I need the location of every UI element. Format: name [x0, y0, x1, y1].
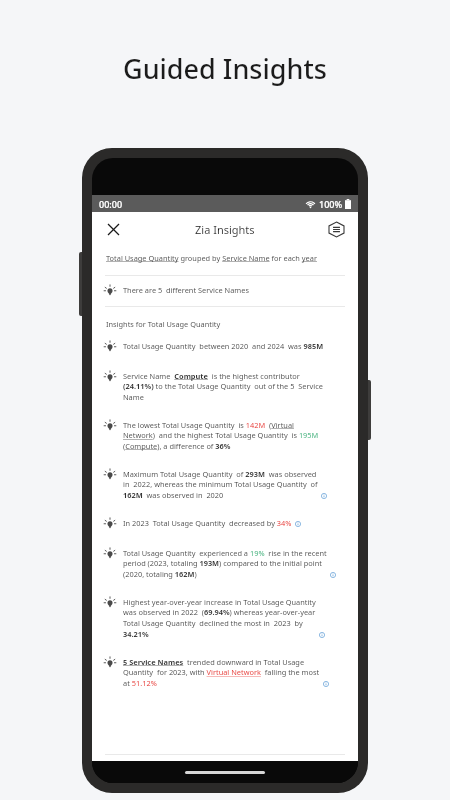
button[interactable]: There are 5 different Service Names: [92, 276, 358, 306]
staticText: Total Usage Quantity grouped by Service …: [106, 253, 317, 263]
button[interactable]: 5 Service Names trended downward in Tota…: [92, 648, 358, 697]
staticText: The lowest Total Usage Quantity is 142M …: [123, 420, 319, 451]
button[interactable]: Menu: [321, 214, 351, 244]
button[interactable]: Close: [98, 214, 128, 244]
staticText: Zia Insights: [195, 222, 255, 237]
button[interactable]: Highest year-over-year increase in Total…: [92, 588, 358, 648]
staticText: In 2023 Total Usage Quantity decreased b…: [123, 518, 292, 528]
button[interactable]: Total Usage Quantity experienced a 19% r…: [92, 539, 358, 588]
button[interactable]: The lowest Total Usage Quantity is 142M …: [92, 411, 358, 460]
staticText: 100%: [319, 198, 343, 210]
staticText: Insights for Total Usage Quantity: [106, 319, 221, 329]
button[interactable]: Maximum Total Usage Quantity of 293M was…: [92, 460, 358, 509]
staticText: Guided Insights: [123, 50, 327, 87]
button[interactable]: Service Name Compute is the highest cont…: [92, 362, 358, 411]
staticText: There are 5 different Service Names: [123, 285, 249, 295]
button[interactable]: Total Usage Quantity between 2020 and 20…: [92, 332, 358, 362]
staticText: Total Usage Quantity experienced a 19% r…: [123, 548, 327, 579]
button[interactable]: In 2023 Total Usage Quantity decreased b…: [92, 509, 358, 539]
staticText: Highest year-over-year increase in Total…: [123, 597, 316, 639]
staticText: Maximum Total Usage Quantity of 293M was…: [123, 469, 318, 500]
staticText: Total Usage Quantity between 2020 and 20…: [123, 341, 324, 351]
staticText: Service Name Compute is the highest cont…: [123, 371, 323, 402]
staticText: 5 Service Names trended downward in Tota…: [123, 657, 320, 688]
staticText: 00:00: [99, 198, 123, 210]
